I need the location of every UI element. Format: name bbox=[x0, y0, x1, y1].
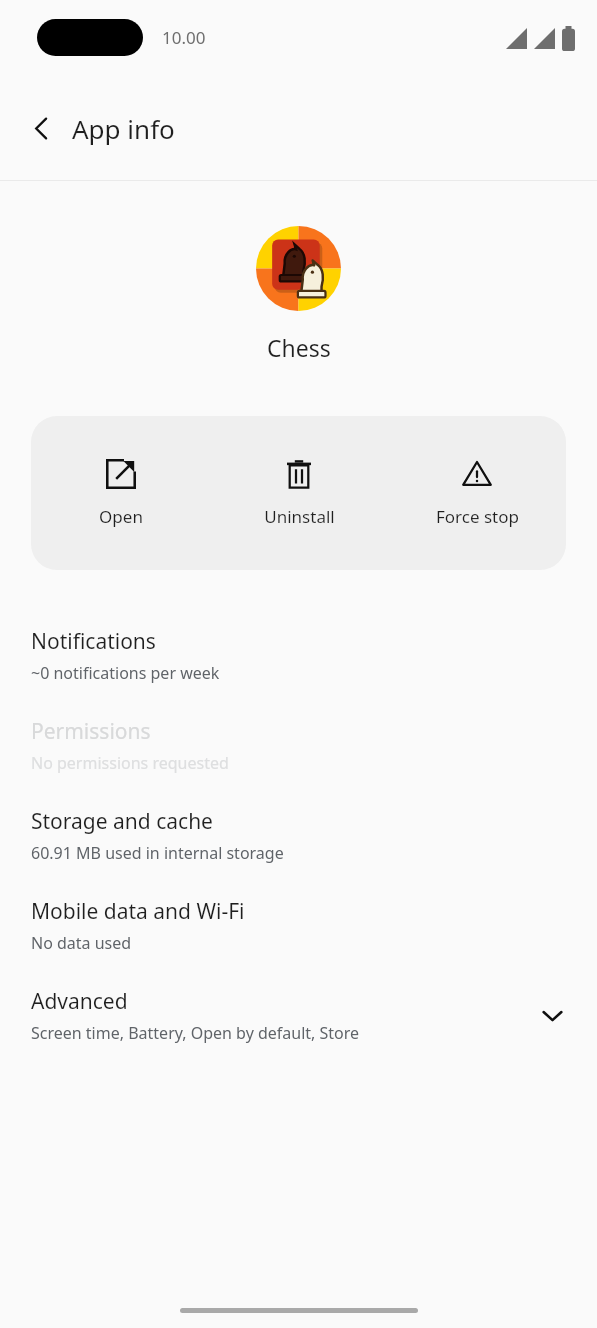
staticText: 10.00 bbox=[162, 26, 206, 49]
button[interactable]: Mobile data and Wi-Fi bbox=[0, 897, 597, 954]
button[interactable]: Notifications bbox=[0, 627, 597, 684]
staticText: Mobile data and Wi-Fi bbox=[31, 897, 245, 926]
staticText: No permissions requested bbox=[31, 752, 229, 774]
staticText: Uninstall bbox=[264, 505, 335, 528]
button: Permissions bbox=[0, 717, 597, 774]
staticText: Force stop bbox=[436, 505, 519, 528]
staticText: Advanced bbox=[31, 987, 128, 1016]
staticText: Storage and cache bbox=[31, 807, 213, 836]
staticText: Permissions bbox=[31, 717, 151, 746]
button[interactable]: Uninstall bbox=[210, 416, 388, 570]
button[interactable]: Force stop bbox=[388, 416, 566, 570]
staticText: 60.91 MB used in internal storage bbox=[31, 842, 284, 864]
staticText: Screen time, Battery, Open by default, S… bbox=[31, 1022, 360, 1044]
staticText: Open bbox=[99, 505, 143, 528]
button[interactable]: Back bbox=[19, 106, 63, 150]
button[interactable]: Storage and cache bbox=[0, 807, 597, 864]
staticText: ~0 notifications per week bbox=[31, 662, 220, 684]
staticText: Chess bbox=[267, 332, 331, 363]
button[interactable]: Open bbox=[31, 416, 210, 570]
staticText: Notifications bbox=[31, 627, 156, 656]
button[interactable]: Advanced bbox=[0, 987, 597, 1044]
staticText: App info bbox=[72, 111, 175, 146]
staticText: No data used bbox=[31, 932, 132, 954]
